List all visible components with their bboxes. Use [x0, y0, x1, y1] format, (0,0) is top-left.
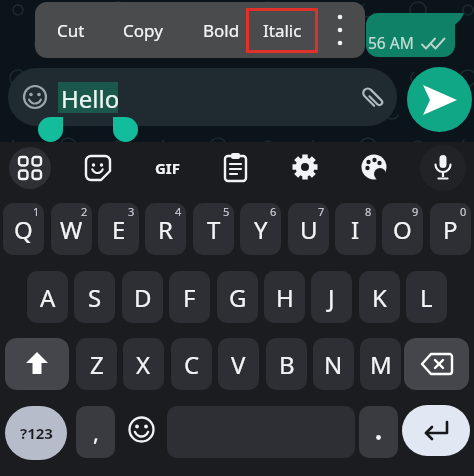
button[interactable]: D: [122, 271, 163, 323]
staticText: 56 AM: [368, 32, 414, 53]
staticText: F: [183, 281, 196, 314]
staticText: 5: [223, 204, 230, 219]
button[interactable]: R: [145, 203, 186, 255]
button[interactable]: L: [406, 271, 447, 323]
button[interactable]: [5, 338, 69, 390]
button[interactable]: [9, 147, 51, 189]
staticText: 3: [128, 204, 135, 219]
button[interactable]: G: [217, 271, 258, 323]
staticText: M: [370, 348, 392, 381]
button[interactable]: [224, 153, 248, 182]
staticText: T: [207, 213, 221, 246]
button[interactable]: K: [359, 271, 400, 323]
staticText: A: [40, 281, 56, 314]
button[interactable]: [124, 412, 158, 446]
staticText: 1: [33, 204, 40, 219]
staticText: N: [324, 348, 343, 381]
staticText: S: [88, 281, 102, 314]
staticText: 7: [318, 204, 325, 219]
staticText: Copy: [123, 19, 163, 42]
staticText: 0: [460, 204, 467, 219]
staticText: Z: [90, 348, 104, 381]
button[interactable]: P: [430, 203, 471, 255]
button[interactable]: I: [335, 203, 376, 255]
staticText: ?123: [20, 423, 53, 443]
button[interactable]: W: [51, 203, 92, 255]
button[interactable]: Bold: [197, 6, 245, 54]
button[interactable]: [326, 6, 354, 54]
button[interactable]: Italic: [258, 6, 306, 54]
button[interactable]: B: [266, 338, 307, 390]
staticText: 8: [365, 204, 372, 219]
staticText: C: [184, 348, 200, 381]
button[interactable]: [291, 153, 319, 181]
button[interactable]: J: [311, 271, 352, 323]
button[interactable]: S: [74, 271, 115, 323]
button[interactable]: V: [218, 338, 259, 390]
button[interactable]: Y: [240, 203, 281, 255]
staticText: GIF: [155, 158, 180, 178]
button[interactable]: Cut: [48, 6, 94, 54]
button[interactable]: N: [313, 338, 354, 390]
staticText: H: [276, 281, 294, 314]
button[interactable]: Z: [76, 338, 117, 390]
button[interactable]: GIF: [148, 156, 186, 180]
button[interactable]: E: [98, 203, 139, 255]
button[interactable]: ?123: [5, 406, 67, 460]
staticText: J: [328, 281, 335, 314]
staticText: U: [300, 213, 318, 246]
button[interactable]: [359, 406, 398, 458]
staticText: 9: [412, 204, 419, 219]
button[interactable]: T: [193, 203, 234, 255]
staticText: K: [372, 281, 387, 314]
staticText: Bold: [203, 19, 240, 42]
staticText: X: [136, 348, 151, 381]
button[interactable]: [84, 154, 112, 182]
staticText: P: [443, 213, 458, 246]
button[interactable]: U: [288, 203, 329, 255]
button[interactable]: [402, 405, 470, 456]
staticText: D: [134, 281, 152, 314]
staticText: E: [112, 213, 126, 246]
staticText: L: [420, 281, 433, 314]
button[interactable]: ,: [76, 406, 115, 458]
staticText: Cut: [57, 19, 85, 42]
button[interactable]: H: [264, 271, 305, 323]
staticText: B: [279, 348, 295, 381]
staticText: W: [60, 213, 83, 246]
button[interactable]: M: [360, 338, 401, 390]
staticText: 4: [175, 204, 182, 219]
staticText: 6: [270, 204, 277, 219]
button[interactable]: F: [169, 271, 210, 323]
button[interactable]: O: [382, 203, 423, 255]
staticText: I: [351, 213, 360, 246]
staticText: Q: [14, 213, 33, 246]
button[interactable]: [407, 67, 472, 132]
button[interactable]: Copy: [116, 6, 170, 54]
button[interactable]: [8, 68, 397, 126]
button[interactable]: A: [27, 271, 68, 323]
staticText: V: [231, 348, 246, 381]
button[interactable]: Q: [3, 203, 44, 255]
button[interactable]: C: [171, 338, 212, 390]
staticText: G: [229, 281, 247, 314]
staticText: 2: [81, 204, 88, 219]
button[interactable]: [360, 153, 388, 181]
staticText: Hello: [61, 82, 120, 115]
button[interactable]: [420, 145, 466, 191]
staticText: R: [158, 213, 173, 246]
staticText: ,: [93, 417, 99, 447]
button[interactable]: [404, 338, 469, 390]
staticText: O: [393, 213, 412, 246]
staticText: Italic: [263, 19, 302, 42]
staticText: Y: [254, 213, 268, 246]
button[interactable]: X: [123, 338, 164, 390]
